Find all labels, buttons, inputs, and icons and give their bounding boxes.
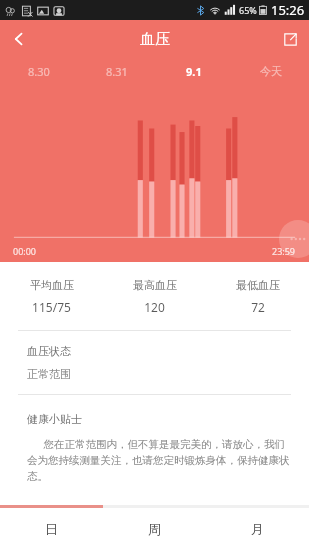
button[interactable]: 9.1 xyxy=(155,58,232,84)
staticText: 血压 xyxy=(140,30,170,49)
staticText: 周 xyxy=(148,521,161,537)
staticText: 最低血压 xyxy=(236,278,280,292)
staticText: 正常范围 xyxy=(27,367,71,381)
button[interactable]: 今天 xyxy=(232,58,309,84)
staticText: 115/75 xyxy=(32,299,71,315)
button[interactable]: Back xyxy=(0,20,38,58)
staticText: 72 xyxy=(251,299,265,315)
staticText: 65% xyxy=(239,4,257,16)
button[interactable]: 周 xyxy=(103,508,206,550)
button[interactable]: 平均血压 xyxy=(0,263,103,330)
staticText: 您在正常范围内，但不算是最完美的，请放心，我们会为您持续测量关注，也请您定时锻炼… xyxy=(27,437,291,483)
staticText: 9.1 xyxy=(186,64,202,79)
button[interactable]: Measure xyxy=(279,220,309,258)
staticText: 今天 xyxy=(260,64,282,78)
staticText: 8.30 xyxy=(28,64,50,79)
staticText: 120 xyxy=(144,299,165,315)
button[interactable]: 日 xyxy=(0,508,103,550)
button[interactable]: 月 xyxy=(206,508,309,550)
button[interactable]: Share xyxy=(271,20,309,58)
staticText: 月 xyxy=(251,521,264,537)
staticText: 健康小贴士 xyxy=(27,412,82,426)
staticText: 8.31 xyxy=(106,64,128,79)
staticText: 最高血压 xyxy=(133,278,177,292)
button[interactable]: 8.31 xyxy=(78,58,155,84)
staticText: 00:00 xyxy=(13,245,37,257)
button[interactable]: 最低血压 xyxy=(206,263,309,330)
staticText: 平均血压 xyxy=(30,278,74,292)
button[interactable]: 8.30 xyxy=(0,58,78,84)
staticText: 15:26 xyxy=(271,1,305,19)
button[interactable]: 最高血压 xyxy=(103,263,206,330)
staticText: 血压状态 xyxy=(27,344,71,358)
staticText: 23:59 xyxy=(272,245,296,257)
staticText: 日 xyxy=(45,521,58,537)
